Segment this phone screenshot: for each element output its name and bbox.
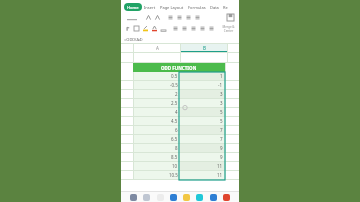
button[interactable]: 7 — [180, 135, 223, 143]
button[interactable]: Bold — [125, 26, 131, 32]
staticText: 4 — [175, 109, 178, 115]
button[interactable]: 3 — [180, 99, 223, 107]
button[interactable]: 1 — [180, 72, 223, 80]
button[interactable]: B — [181, 44, 227, 51]
staticText: B — [203, 45, 206, 51]
button[interactable]: 2 — [134, 90, 178, 98]
button[interactable]: 11 — [180, 171, 223, 179]
staticText: Formulas — [188, 5, 206, 10]
button[interactable]: 5 — [180, 108, 223, 116]
staticText: 11 — [217, 172, 223, 178]
button[interactable]: Font colour — [151, 25, 158, 32]
button[interactable]: 2.5 — [134, 99, 178, 107]
staticText: 5 — [220, 109, 223, 115]
button[interactable]: Borders — [133, 25, 140, 32]
button[interactable]: 10.5 — [134, 171, 178, 179]
staticText: 2 — [175, 91, 178, 97]
staticText: Home — [127, 5, 139, 10]
button[interactable]: Page Layout — [160, 3, 184, 11]
button[interactable]: 5 — [180, 117, 223, 125]
button[interactable]: 0.5 — [134, 72, 178, 80]
staticText: 6 — [175, 127, 178, 133]
button[interactable]: Align — [185, 14, 192, 21]
staticText: 2.5 — [171, 100, 178, 106]
staticText: 10 — [172, 163, 178, 169]
staticText: Data — [210, 5, 219, 10]
button[interactable]: -0.5 — [134, 81, 178, 89]
button[interactable]: 11 — [180, 162, 223, 170]
staticText: 8 — [175, 145, 178, 151]
button[interactable]: Insert — [144, 3, 156, 11]
staticText: 7 — [220, 136, 223, 142]
button[interactable]: Home — [124, 3, 142, 11]
button[interactable]: Cell alignment — [181, 25, 188, 32]
button[interactable]: App 1 — [143, 194, 150, 201]
staticText: A — [156, 45, 159, 51]
button[interactable]: A — [134, 44, 180, 52]
button[interactable]: Formulas — [188, 3, 206, 11]
staticText: Re — [223, 5, 228, 10]
button[interactable]: Data — [210, 3, 219, 11]
button[interactable]: Cell alignment — [199, 25, 206, 32]
staticText: =ODD(A4) — [124, 37, 143, 42]
staticText: Insert — [144, 5, 156, 10]
staticText: 3 — [220, 91, 223, 97]
button[interactable]: 6.5 — [134, 135, 178, 143]
button[interactable]: Re — [223, 3, 228, 11]
button[interactable]: 8.5 — [134, 153, 178, 161]
button[interactable]: 7 — [180, 126, 223, 134]
button[interactable]: Decrease font — [154, 14, 161, 21]
button[interactable]: ODD FUNCTION — [133, 63, 225, 72]
staticText: 11 — [217, 163, 223, 169]
button[interactable]: =ODD(A4) — [124, 35, 239, 43]
button[interactable]: Cell alignment — [208, 25, 215, 32]
button[interactable]: 6 — [134, 126, 178, 134]
staticText: -1 — [218, 82, 223, 88]
button[interactable]: -1 — [180, 81, 223, 89]
button[interactable]: Align — [167, 14, 174, 21]
button[interactable]: Highlight — [160, 25, 167, 32]
staticText: 4.5 — [171, 118, 178, 124]
button[interactable]: Cell alignment — [172, 25, 179, 32]
staticText: 3 — [220, 100, 223, 106]
button[interactable]: App 5 — [196, 194, 203, 201]
button[interactable]: 4.5 — [134, 117, 178, 125]
button[interactable]: Increase font — [145, 14, 152, 21]
staticText: 7 — [220, 127, 223, 133]
staticText: 1 — [220, 73, 223, 79]
button[interactable]: 9 — [180, 153, 223, 161]
staticText: ODD FUNCTION — [161, 65, 197, 71]
button[interactable]: App 3 — [170, 194, 177, 201]
button[interactable]: Font size — [125, 12, 139, 23]
staticText: 0.5 — [171, 73, 178, 79]
button[interactable]: 10 — [134, 162, 178, 170]
staticText: 10.5 — [169, 172, 178, 178]
button[interactable]: App 4 — [183, 194, 190, 201]
staticText: Page Layout — [160, 5, 184, 10]
staticText: -0.5 — [170, 82, 178, 88]
button[interactable]: 4 — [134, 108, 178, 116]
button[interactable]: 8 — [134, 144, 178, 152]
staticText: 8.5 — [171, 154, 178, 160]
button[interactable]: 9 — [180, 144, 223, 152]
button[interactable]: Save — [226, 13, 235, 22]
staticText: 5 — [220, 118, 223, 124]
button[interactable]: Align — [176, 14, 183, 21]
button[interactable]: Align — [194, 14, 201, 21]
button[interactable]: App 0 — [130, 194, 137, 201]
button[interactable]: 3 — [180, 90, 223, 98]
button[interactable]: Merge & Center — [221, 25, 235, 33]
button[interactable]: App 7 — [223, 194, 230, 201]
staticText: Merge & Center — [222, 25, 235, 33]
button[interactable]: Fill colour — [142, 25, 149, 32]
staticText: 6.5 — [171, 136, 178, 142]
staticText: 9 — [220, 145, 223, 151]
staticText: 9 — [220, 154, 223, 160]
button[interactable]: App 6 — [210, 194, 217, 201]
button[interactable]: Cell alignment — [190, 25, 197, 32]
